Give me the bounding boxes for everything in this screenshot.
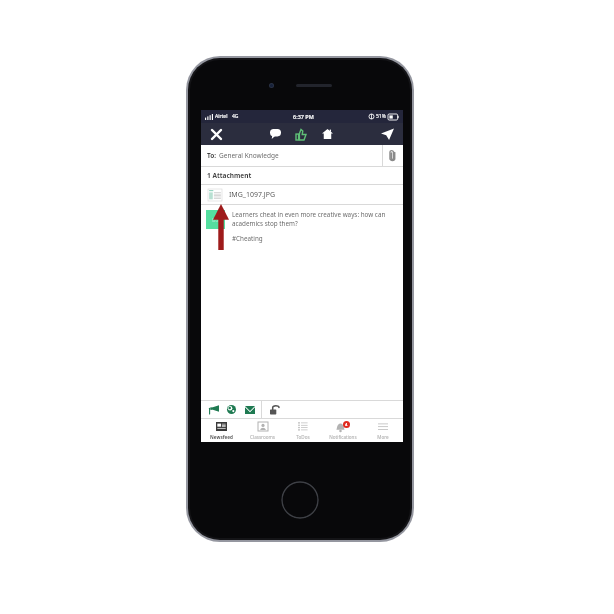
button[interactable]: Send bbox=[371, 123, 403, 145]
staticText: BS bbox=[212, 216, 219, 223]
button[interactable]: Public bbox=[224, 402, 239, 417]
staticText: Classrooms bbox=[250, 434, 275, 440]
staticText: General Knowledge bbox=[219, 151, 279, 160]
button[interactable]: Classrooms bbox=[242, 419, 283, 442]
button[interactable]: To: bbox=[207, 145, 382, 166]
staticText: 4G bbox=[232, 113, 239, 120]
staticText: 6:37 PM bbox=[293, 113, 314, 120]
button[interactable]: Like bbox=[290, 123, 312, 145]
staticText: To: bbox=[207, 151, 217, 160]
button[interactable]: BS bbox=[201, 205, 403, 248]
staticText: #Cheating bbox=[232, 234, 263, 243]
staticText: Notifications bbox=[329, 434, 357, 440]
staticText: 51% bbox=[376, 113, 386, 120]
button[interactable]: Announce bbox=[206, 402, 221, 417]
button[interactable]: IMG_1097.JPG bbox=[201, 185, 403, 204]
staticText: ToDos bbox=[296, 434, 310, 440]
staticText: Learners cheat in even more creative way… bbox=[232, 210, 398, 228]
button[interactable]: Close bbox=[201, 123, 231, 145]
staticText: Newsfeed bbox=[210, 434, 233, 440]
button[interactable]: More bbox=[363, 419, 403, 442]
staticText: More bbox=[377, 434, 389, 440]
button[interactable]: Newsfeed bbox=[201, 419, 242, 442]
button[interactable]: Message bbox=[242, 402, 257, 417]
button[interactable]: 4 bbox=[323, 419, 363, 442]
button[interactable]: Attach file bbox=[383, 145, 403, 166]
button[interactable]: Home bbox=[316, 123, 338, 145]
staticText: 1 Attachment bbox=[207, 171, 252, 180]
button[interactable]: Unlock bbox=[267, 402, 282, 417]
button[interactable]: Comment bbox=[264, 123, 286, 145]
button[interactable]: ToDos bbox=[283, 419, 323, 442]
staticText: IMG_1097.JPG bbox=[229, 190, 276, 200]
staticText: 4 bbox=[345, 422, 348, 428]
staticText: Airtel bbox=[215, 113, 228, 120]
